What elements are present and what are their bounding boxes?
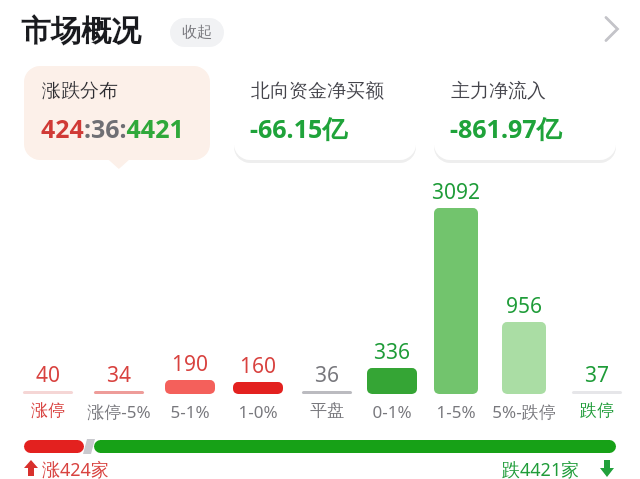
staticText: 1-0%	[213, 400, 303, 424]
staticText: 涨跌分布	[42, 79, 118, 103]
staticText: 北向资金净买额	[251, 79, 384, 103]
button[interactable]: 956	[484, 291, 564, 319]
staticText: 5-1%	[145, 400, 235, 424]
staticText: -66.15亿	[250, 111, 348, 145]
button[interactable]: 336	[352, 337, 432, 365]
staticText: -861.97亿	[450, 111, 562, 145]
button[interactable]: 北向资金净买额	[234, 66, 416, 160]
staticText: 37	[557, 360, 637, 388]
staticText: 336	[352, 337, 432, 365]
button[interactable]: 主力净流入	[434, 66, 616, 160]
staticText: 市场概况	[21, 12, 141, 50]
button[interactable]: 收起	[170, 18, 224, 47]
button[interactable]: 34	[79, 360, 159, 388]
button[interactable]: 36	[287, 360, 367, 388]
staticText: 36	[287, 360, 367, 388]
staticText: 平盘	[282, 400, 372, 424]
staticText: 主力净流入	[451, 79, 546, 103]
button[interactable]: 40	[8, 360, 88, 388]
staticText: 涨424家	[42, 457, 109, 479]
staticText: 跌停	[552, 400, 640, 424]
button[interactable]: 涨跌分布	[24, 66, 210, 160]
staticText: 190	[150, 349, 230, 377]
button[interactable]: 160	[218, 351, 298, 379]
staticText: 1-5%	[411, 400, 501, 424]
button[interactable]: 跌4421家	[480, 456, 620, 479]
button[interactable]: 37	[557, 360, 637, 388]
staticText: 收起	[182, 23, 212, 42]
button[interactable]: 3092	[416, 177, 496, 205]
staticText: 涨停	[3, 400, 93, 424]
staticText: 涨停-5%	[74, 400, 164, 424]
staticText: 3092	[416, 177, 496, 205]
button[interactable]: 涨424家	[22, 456, 192, 479]
staticText: 5%-跌停	[479, 400, 569, 424]
button[interactable]: Open market overview	[594, 10, 632, 48]
staticText: 40	[8, 360, 88, 388]
staticText: 0-1%	[347, 400, 437, 424]
staticText: 424:36:4421	[41, 111, 184, 145]
staticText: 跌4421家	[502, 457, 580, 479]
staticText: 956	[484, 291, 564, 319]
staticText: 34	[79, 360, 159, 388]
staticText: 160	[218, 351, 298, 379]
button[interactable]: 190	[150, 349, 230, 377]
